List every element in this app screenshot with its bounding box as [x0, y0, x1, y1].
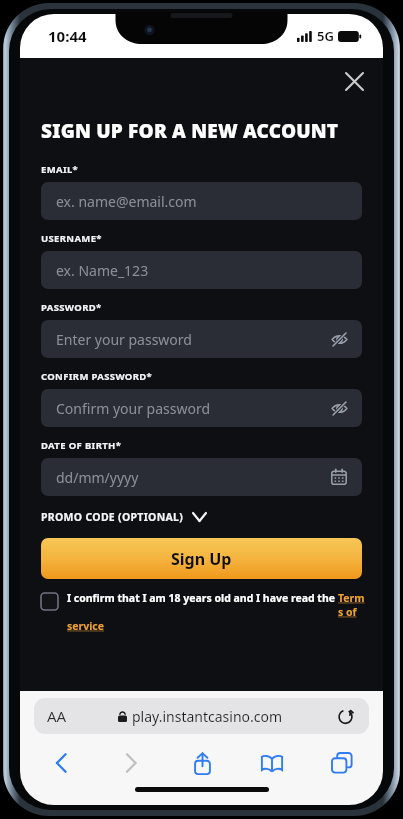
button[interactable]: Enter your password: [41, 320, 362, 358]
staticText: DATE OF BIRTH*: [41, 439, 122, 452]
button[interactable]: Back: [38, 744, 84, 782]
staticText: Sign Up: [171, 548, 232, 570]
staticText: service: [67, 619, 105, 633]
button[interactable]: AA: [34, 698, 369, 734]
staticText: ex. name@email.com: [56, 192, 197, 211]
staticText: EMAIL*: [41, 163, 79, 176]
button[interactable]: dd/mm/yyyy: [41, 458, 362, 496]
button[interactable]: ex. name@email.com: [41, 182, 362, 220]
staticText: Confirm your password: [56, 399, 211, 418]
button[interactable]: Terms of: [338, 591, 367, 619]
button[interactable]: Tabs: [319, 744, 365, 782]
staticText: SIGN UP FOR A NEW ACCOUNT: [41, 118, 339, 144]
button[interactable]: Show password: [328, 397, 350, 419]
staticText: Enter your password: [56, 330, 192, 349]
button[interactable]: Show password: [328, 328, 350, 350]
staticText: dd/mm/yyyy: [56, 468, 139, 487]
staticText: CONFIRM PASSWORD*: [41, 370, 153, 383]
button[interactable]: Bookmarks: [249, 744, 295, 782]
button[interactable]: Pick date: [328, 466, 350, 488]
button[interactable]: Share: [179, 744, 225, 782]
staticText: USERNAME*: [41, 232, 102, 245]
staticText: PASSWORD*: [41, 301, 102, 314]
staticText: I confirm that I am 18 years old and I h…: [67, 591, 338, 605]
button[interactable]: Reload: [334, 705, 356, 727]
button[interactable]: Sign Up: [41, 538, 362, 579]
button[interactable]: I confirm that I am 18 years old and I h…: [41, 591, 367, 633]
staticText: ex. Name_123: [56, 261, 149, 280]
button[interactable]: Forward: [108, 744, 154, 782]
staticText: PROMO CODE (OPTIONAL): [41, 510, 184, 524]
staticText: 5G: [317, 27, 334, 45]
button[interactable]: AA: [47, 706, 67, 726]
staticText: play.instantcasino.com: [132, 707, 283, 726]
button[interactable]: ex. Name_123: [41, 251, 362, 289]
staticText: 10:44: [48, 26, 87, 46]
button[interactable]: Confirm your password: [41, 389, 362, 427]
button[interactable]: Close: [337, 64, 371, 98]
button[interactable]: PROMO CODE (OPTIONAL): [41, 510, 206, 524]
